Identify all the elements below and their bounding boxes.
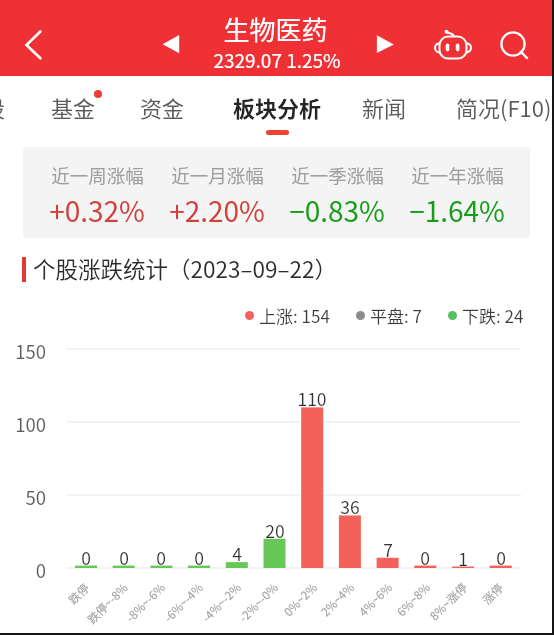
staticText: 8%~涨停 xyxy=(426,579,471,624)
button[interactable]: 基金 xyxy=(38,78,108,134)
button[interactable]: Previous sector xyxy=(152,24,192,64)
button[interactable]: 平盘: 7 xyxy=(356,303,422,328)
staticText: 20 xyxy=(265,518,285,543)
staticText: 4 xyxy=(232,541,242,566)
staticText: 近一月涨幅 xyxy=(171,162,264,189)
staticText: -4%~-2% xyxy=(198,579,245,626)
staticText: 2%~4% xyxy=(317,579,358,620)
staticText: -8%~-6% xyxy=(122,579,169,626)
button[interactable]: Next sector xyxy=(366,24,406,64)
staticText: 跌停~-8% xyxy=(83,579,132,628)
staticText: 1 xyxy=(458,546,468,571)
staticText: 近一年涨幅 xyxy=(411,162,504,189)
button[interactable]: 下跌: 24 xyxy=(448,303,524,328)
staticText: 新闻 xyxy=(362,91,407,123)
staticText: 150 xyxy=(15,338,46,365)
button[interactable]: AI assistant xyxy=(431,22,475,66)
staticText: 下跌: 24 xyxy=(462,303,524,328)
staticText: 0 xyxy=(35,557,46,584)
staticText: 0 xyxy=(119,545,129,570)
button[interactable]: Back xyxy=(10,20,58,68)
staticText: 0 xyxy=(420,545,430,570)
staticText: 基金 xyxy=(51,91,96,123)
button[interactable]: Search xyxy=(489,20,537,68)
button[interactable]: 新闻 xyxy=(349,78,419,134)
staticText: 个股涨跌统计（2023–09–22） xyxy=(33,252,338,284)
staticText: 2329.07 1.25% xyxy=(213,46,341,74)
staticText: −0.83% xyxy=(289,190,385,230)
staticText: −1.64% xyxy=(409,190,505,230)
staticText: -2%~-0% xyxy=(235,579,282,626)
staticText: +2.20% xyxy=(169,190,265,230)
button[interactable]: 股 xyxy=(0,78,18,134)
staticText: 上涨: 154 xyxy=(259,303,330,328)
button[interactable]: 简况(F10) xyxy=(414,78,554,134)
staticText: 110 xyxy=(297,386,327,411)
staticText: 36 xyxy=(340,494,360,519)
staticText: 近一周涨幅 xyxy=(51,162,144,189)
staticText: 0 xyxy=(194,545,204,570)
staticText: 简况(F10) xyxy=(456,91,552,123)
staticText: 0 xyxy=(156,545,166,570)
button[interactable]: 板块分析 xyxy=(220,78,334,134)
staticText: 平盘: 7 xyxy=(370,303,422,328)
button[interactable]: 资金 xyxy=(127,78,197,134)
staticText: 0 xyxy=(81,545,91,570)
staticText: 跌停 xyxy=(64,579,93,608)
staticText: 涨停 xyxy=(478,579,507,608)
staticText: 7 xyxy=(383,537,393,562)
staticText: 50 xyxy=(25,484,46,511)
staticText: 板块分析 xyxy=(233,91,322,123)
staticText: 股 xyxy=(0,91,6,123)
staticText: 生物医药 xyxy=(223,10,328,48)
button[interactable]: 上涨: 154 xyxy=(245,303,330,328)
staticText: 100 xyxy=(15,411,46,438)
staticText: 资金 xyxy=(140,91,185,123)
staticText: 4%~6% xyxy=(355,579,396,620)
staticText: -6%~-4% xyxy=(160,579,207,626)
staticText: 近一季涨幅 xyxy=(291,162,384,189)
staticText: 0%~2% xyxy=(280,579,321,620)
staticText: 6%~8% xyxy=(393,579,434,620)
staticText: 0 xyxy=(496,545,506,570)
staticText: +0.32% xyxy=(49,190,145,230)
